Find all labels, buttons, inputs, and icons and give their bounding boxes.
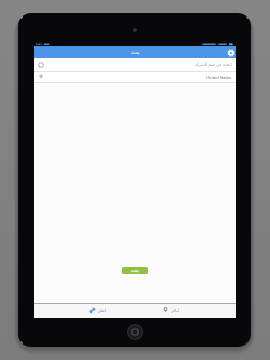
staticText: اتصل — [98, 309, 106, 313]
button[interactable]: أماكن — [137, 303, 205, 318]
staticText: United States — [206, 75, 232, 80]
button[interactable]: اتصل — [63, 303, 131, 318]
staticText: بحث — [131, 268, 139, 273]
button[interactable] — [227, 49, 235, 57]
button[interactable]: ابحث عن اسم الشركة — [34, 58, 236, 71]
button[interactable]: بحث — [122, 267, 148, 274]
staticText: ابحث عن اسم الشركة — [195, 62, 232, 67]
staticText: بحث — [131, 50, 140, 55]
button[interactable] — [127, 324, 143, 340]
button[interactable]: United States — [34, 72, 236, 82]
staticText: أماكن — [171, 309, 180, 313]
